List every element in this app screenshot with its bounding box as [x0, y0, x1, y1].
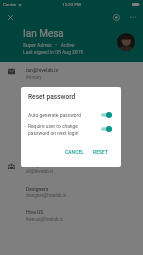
staticText: Hive US	[26, 209, 44, 215]
staticText: all@hivelab.is	[26, 169, 54, 174]
staticText: Last signed in 05 Aug 2019	[23, 49, 84, 55]
button[interactable]	[0, 158, 143, 181]
staticText: Require user to change password on next …	[28, 123, 101, 136]
button[interactable]: RESET	[91, 148, 111, 158]
button[interactable]	[0, 204, 143, 227]
staticText: Carrier	[3, 2, 17, 7]
staticText: designer@hivelab.is	[26, 193, 67, 198]
button[interactable]: Security	[110, 11, 122, 23]
staticText: ian@hivelab.is	[26, 67, 59, 73]
staticText: Designers	[26, 186, 49, 192]
staticText: Auto generate password	[28, 112, 101, 118]
button[interactable]: Toggle	[101, 112, 112, 118]
button[interactable]: Require user to change password on next …	[21, 121, 121, 137]
staticText: Super Admin • Active	[23, 42, 75, 48]
button[interactable]	[0, 181, 143, 204]
staticText: Primary	[26, 75, 42, 80]
staticText: Reset password	[28, 93, 76, 101]
button[interactable]: More options	[127, 11, 139, 23]
button[interactable]: Toggle	[101, 126, 112, 132]
button[interactable]: Auto generate password	[21, 109, 121, 120]
button[interactable]: CANCEL	[63, 148, 87, 158]
staticText: hive-us@hivelab.is	[26, 217, 63, 222]
staticText: RESET	[93, 150, 109, 156]
staticText: CANCEL	[65, 150, 85, 156]
staticText: Ian Mesa	[23, 28, 64, 40]
staticText: 12:33 PM	[0, 2, 143, 7]
staticText: Groups	[26, 162, 43, 168]
button[interactable]: Close	[4, 11, 16, 23]
button[interactable]	[0, 62, 143, 84]
